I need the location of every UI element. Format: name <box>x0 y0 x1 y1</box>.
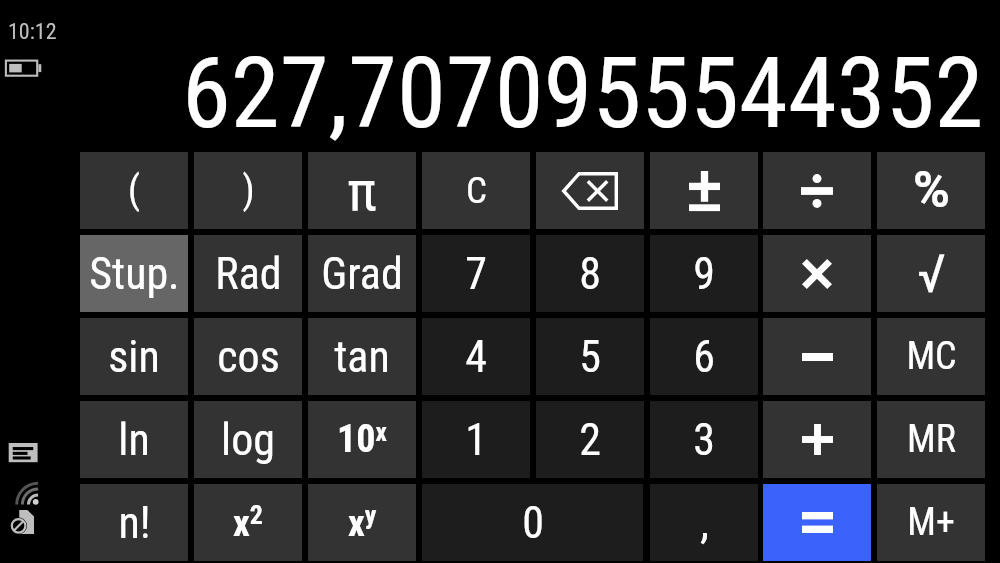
staticText: sin <box>108 331 160 383</box>
button[interactable]: √ <box>877 235 985 312</box>
other: No SIM card <box>12 510 38 536</box>
staticText: % <box>913 161 950 220</box>
button[interactable]: Divide <box>763 152 871 229</box>
button[interactable]: 5 <box>536 318 644 395</box>
button[interactable]: n! <box>80 484 188 561</box>
button[interactable]: 10x <box>308 401 416 478</box>
staticText: 10:12 <box>8 19 57 45</box>
staticText: 0 <box>522 497 544 549</box>
staticText: M+ <box>907 500 955 545</box>
staticText: tan <box>334 331 390 383</box>
staticText: 627,7070955544352 <box>182 35 984 151</box>
button[interactable]: Rad <box>194 235 302 312</box>
button[interactable]: Grad <box>308 235 416 312</box>
button[interactable]: log <box>194 401 302 478</box>
staticText: √ <box>917 243 946 305</box>
button[interactable]: 7 <box>422 235 530 312</box>
button[interactable]: M+ <box>877 484 985 561</box>
staticText: MC <box>906 334 957 379</box>
button[interactable]: MC <box>877 318 985 395</box>
staticText: 8 <box>579 248 601 300</box>
staticText: ) <box>242 168 255 213</box>
staticText: xy <box>348 500 377 545</box>
button[interactable]: Backspace <box>536 152 644 229</box>
button[interactable]: Minus <box>763 318 871 395</box>
button[interactable]: 0 <box>422 484 643 561</box>
button[interactable]: 2 <box>536 401 644 478</box>
staticText: 3 <box>693 414 715 466</box>
staticText: ( <box>128 168 140 213</box>
staticText: C <box>466 169 487 212</box>
staticText: Rad <box>215 248 282 300</box>
other: Keyboard <box>8 443 38 463</box>
button[interactable]: 4 <box>422 318 530 395</box>
staticText: 6 <box>693 331 715 383</box>
button[interactable]: Plus <box>763 401 871 478</box>
button[interactable]: Equals <box>763 484 871 561</box>
button[interactable]: 9 <box>650 235 758 312</box>
staticText: Stup. <box>89 248 180 300</box>
button[interactable]: π <box>308 152 416 229</box>
button[interactable]: 1 <box>422 401 530 478</box>
button[interactable]: 6 <box>650 318 758 395</box>
staticText: π <box>347 158 377 224</box>
button[interactable]: Multiply <box>763 235 871 312</box>
staticText: MR <box>907 417 956 462</box>
button[interactable]: C <box>422 152 530 229</box>
staticText: 5 <box>579 331 601 383</box>
button[interactable]: tan <box>308 318 416 395</box>
staticText: x2 <box>233 500 263 545</box>
staticText: 7 <box>465 248 487 300</box>
staticText: 9 <box>693 248 715 300</box>
button[interactable]: ) <box>194 152 302 229</box>
button[interactable]: x2 <box>194 484 302 561</box>
staticText: 10x <box>337 417 387 462</box>
button[interactable]: % <box>877 152 985 229</box>
staticText: 4 <box>465 331 487 383</box>
staticText: 2 <box>579 414 601 466</box>
button[interactable]: Stup. <box>80 235 188 312</box>
button[interactable]: xy <box>308 484 416 561</box>
button[interactable]: ln <box>80 401 188 478</box>
staticText: , <box>700 497 709 549</box>
other: Signal strength <box>14 478 44 508</box>
button[interactable]: 3 <box>650 401 758 478</box>
staticText: ln <box>118 414 150 466</box>
button[interactable]: 8 <box>536 235 644 312</box>
staticText: 1 <box>465 414 487 466</box>
button[interactable]: sin <box>80 318 188 395</box>
staticText: Grad <box>321 248 403 300</box>
button[interactable]: , <box>650 484 758 561</box>
button[interactable]: cos <box>194 318 302 395</box>
staticText: cos <box>217 331 280 383</box>
button[interactable]: Plus minus <box>650 152 758 229</box>
button[interactable]: MR <box>877 401 985 478</box>
staticText: log <box>221 414 275 466</box>
staticText: n! <box>118 497 151 549</box>
button[interactable]: ( <box>80 152 188 229</box>
